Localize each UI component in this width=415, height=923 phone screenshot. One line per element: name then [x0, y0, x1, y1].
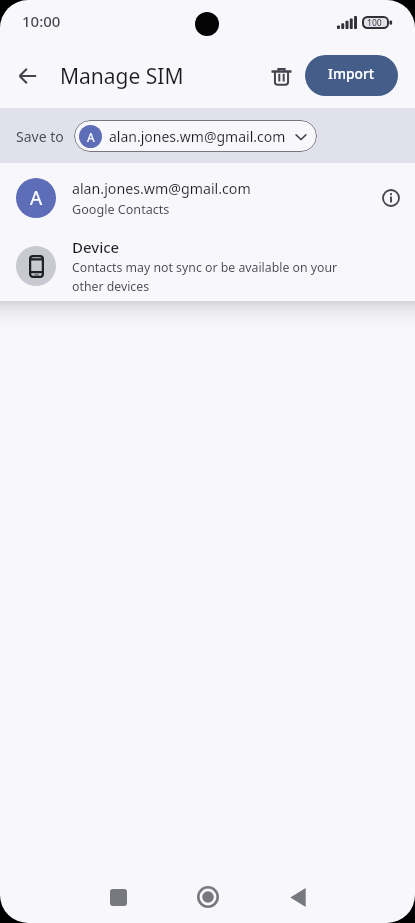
staticText: Import: [328, 64, 375, 83]
button[interactable]: Home: [180, 869, 236, 923]
button[interactable]: Delete: [259, 54, 304, 99]
staticText: 10:00: [22, 11, 61, 31]
staticText: Device: [72, 237, 120, 257]
button[interactable]: A: [74, 120, 317, 152]
button[interactable]: Back: [4, 52, 52, 100]
staticText: 100: [367, 17, 382, 29]
staticText: Google Contacts: [72, 201, 170, 218]
staticText: A: [30, 185, 43, 211]
button[interactable]: Device: [0, 233, 415, 299]
button[interactable]: A: [0, 170, 415, 226]
staticText: Contacts may not sync or be available on…: [72, 259, 348, 295]
button[interactable]: Recent apps: [90, 869, 146, 923]
staticText: A: [87, 129, 95, 145]
button[interactable]: Info: [375, 182, 407, 214]
button[interactable]: Back: [270, 869, 326, 923]
staticText: alan.jones.wm@gmail.com: [72, 179, 251, 198]
staticText: alan.jones.wm@gmail.com: [109, 127, 286, 146]
staticText: Save to: [16, 127, 64, 146]
staticText: Manage SIM: [60, 62, 184, 91]
button[interactable]: Import: [305, 55, 398, 96]
